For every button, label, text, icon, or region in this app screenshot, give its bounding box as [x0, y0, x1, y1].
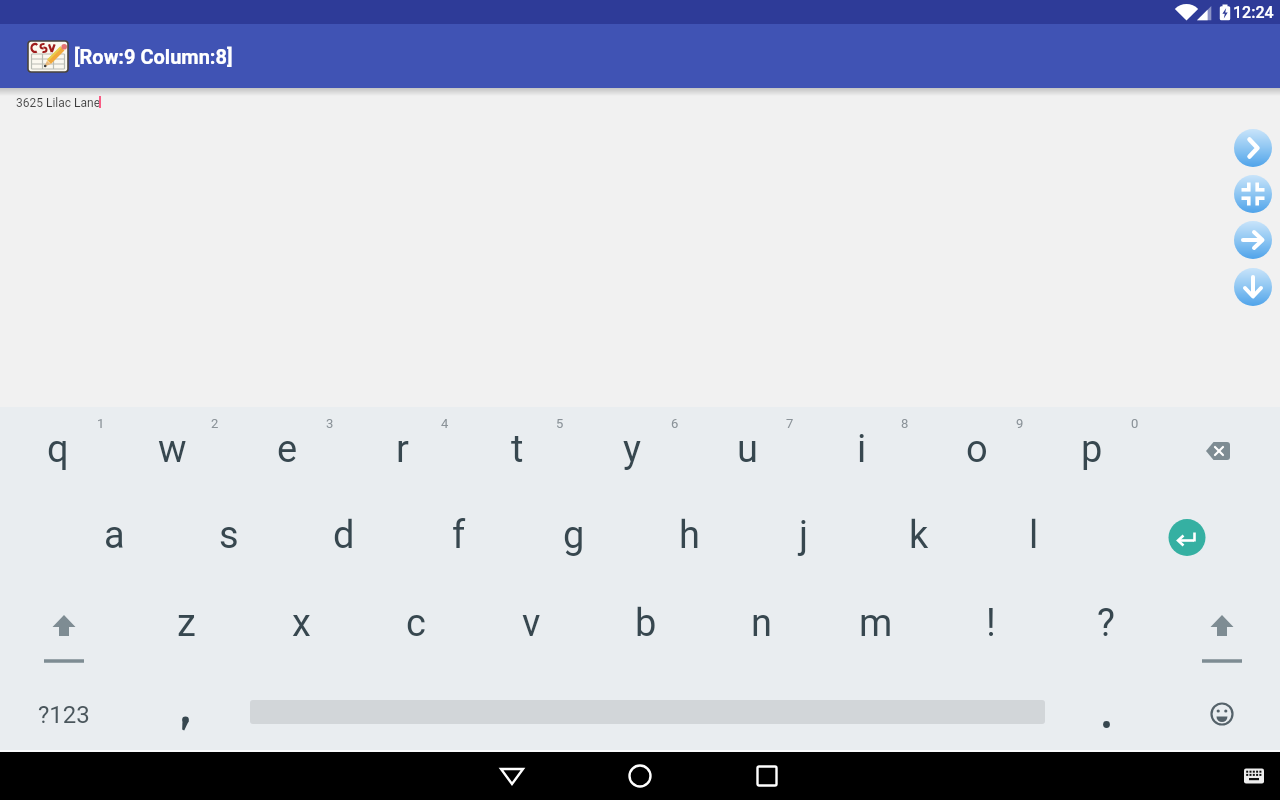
- staticText: m: [859, 601, 893, 646]
- button[interactable]: 5: [520, 383, 600, 463]
- button[interactable]: a: [74, 495, 154, 575]
- button[interactable]: 7: [750, 383, 830, 463]
- button[interactable]: b: [606, 583, 686, 663]
- staticText: i: [857, 427, 867, 472]
- staticText: 9: [1016, 416, 1024, 431]
- button[interactable]: 8: [865, 383, 945, 463]
- button[interactable]: h: [649, 495, 729, 575]
- staticText: y: [623, 427, 641, 472]
- button[interactable]: 1: [61, 383, 141, 463]
- button[interactable]: !: [951, 583, 1031, 663]
- staticText: 5: [556, 416, 564, 431]
- button[interactable]: q: [18, 409, 98, 489]
- staticText: v: [522, 601, 541, 646]
- button[interactable]: i: [822, 409, 902, 489]
- staticText: 7: [786, 416, 794, 431]
- button[interactable]: p: [1052, 409, 1132, 489]
- staticText: 4: [441, 416, 449, 431]
- staticText: r: [396, 427, 409, 472]
- button[interactable]: [616, 752, 664, 800]
- button[interactable]: [1234, 268, 1272, 306]
- staticText: t: [511, 427, 524, 472]
- staticText: 6: [671, 416, 679, 431]
- staticText: b: [635, 601, 657, 646]
- button[interactable]: 3: [290, 383, 370, 463]
- staticText: s: [219, 513, 239, 558]
- button[interactable]: ?123: [24, 675, 104, 755]
- staticText: 12:24: [1233, 3, 1274, 22]
- button[interactable]: l: [994, 495, 1074, 575]
- button[interactable]: u: [707, 409, 787, 489]
- button[interactable]: [488, 752, 536, 800]
- staticText: c: [406, 601, 426, 646]
- staticText: d: [333, 513, 355, 558]
- button[interactable]: 4: [405, 383, 485, 463]
- staticText: o: [966, 427, 988, 472]
- staticText: g: [563, 513, 585, 558]
- button[interactable]: [1230, 752, 1278, 800]
- staticText: 0: [1131, 416, 1139, 431]
- button[interactable]: [155, 684, 215, 744]
- button[interactable]: [743, 752, 791, 800]
- button[interactable]: t: [477, 409, 557, 489]
- staticText: !: [986, 601, 996, 646]
- button[interactable]: 2: [175, 383, 255, 463]
- staticText: ?: [1097, 601, 1115, 646]
- button[interactable]: [1077, 684, 1137, 744]
- button[interactable]: j: [764, 495, 844, 575]
- button[interactable]: r: [362, 409, 442, 489]
- button[interactable]: [1234, 175, 1272, 213]
- button[interactable]: o: [937, 409, 1017, 489]
- button[interactable]: d: [304, 495, 384, 575]
- staticText: h: [679, 513, 700, 558]
- button[interactable]: e: [247, 409, 327, 489]
- staticText: f: [452, 513, 466, 558]
- staticText: a: [104, 513, 125, 558]
- button[interactable]: g: [534, 495, 614, 575]
- staticText: e: [277, 427, 298, 472]
- button[interactable]: 0: [1095, 383, 1175, 463]
- button[interactable]: y: [592, 409, 672, 489]
- button[interactable]: m: [836, 583, 916, 663]
- button[interactable]: [28, 41, 68, 72]
- staticText: 1: [97, 416, 105, 431]
- button[interactable]: [1234, 129, 1272, 167]
- button[interactable]: v: [491, 583, 571, 663]
- staticText: n: [751, 601, 772, 646]
- staticText: p: [1081, 427, 1103, 472]
- staticText: [Row:9 Column:8]: [74, 45, 233, 68]
- button[interactable]: 6: [635, 383, 715, 463]
- staticText: q: [47, 427, 69, 472]
- staticText: j: [799, 513, 809, 558]
- button[interactable]: ?: [1066, 583, 1146, 663]
- staticText: 3625 Lilac Lane: [16, 96, 101, 110]
- button[interactable]: c: [376, 583, 456, 663]
- staticText: 2: [211, 416, 219, 431]
- staticText: 3: [326, 416, 334, 431]
- button[interactable]: s: [189, 495, 269, 575]
- staticText: 8: [901, 416, 909, 431]
- staticText: u: [737, 427, 758, 472]
- staticText: w: [158, 427, 187, 472]
- staticText: x: [292, 601, 311, 646]
- button[interactable]: 9: [980, 383, 1060, 463]
- staticText: ?123: [38, 701, 90, 729]
- button[interactable]: k: [879, 495, 959, 575]
- button[interactable]: z: [146, 583, 226, 663]
- button[interactable]: n: [721, 583, 801, 663]
- staticText: z: [177, 601, 196, 646]
- button[interactable]: x: [261, 583, 341, 663]
- button[interactable]: w: [132, 409, 212, 489]
- button[interactable]: f: [419, 495, 499, 575]
- staticText: k: [909, 513, 929, 558]
- button[interactable]: [1234, 221, 1272, 259]
- staticText: l: [1029, 513, 1039, 558]
